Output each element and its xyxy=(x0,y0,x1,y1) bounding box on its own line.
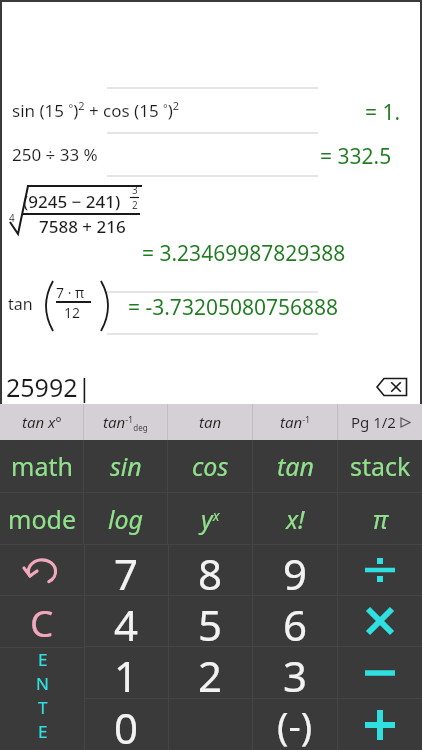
staticText: 2 xyxy=(198,647,223,698)
staticText: stack xyxy=(350,449,411,483)
staticText: C xyxy=(30,597,54,647)
staticText: 9 xyxy=(283,545,308,595)
staticText: 3 xyxy=(283,647,308,698)
button[interactable]: 2 xyxy=(169,647,252,698)
staticText: mode xyxy=(8,502,76,536)
button[interactable]: Minus xyxy=(338,647,422,698)
button[interactable]: tan x° xyxy=(0,404,83,440)
button[interactable]: 4 xyxy=(85,596,168,646)
button[interactable]: tan-1 xyxy=(253,404,337,440)
staticText: 4 xyxy=(9,211,15,225)
staticText: = 1. xyxy=(365,98,401,127)
staticText: π xyxy=(373,502,388,536)
staticText: sin xyxy=(110,449,142,483)
staticText: tan xyxy=(8,293,33,315)
staticText: 8 xyxy=(198,545,223,595)
staticText: 0 xyxy=(114,699,139,750)
staticText: tan xyxy=(199,412,222,432)
button[interactable]: tan xyxy=(253,440,337,492)
button[interactable]: 5 xyxy=(169,596,252,646)
staticText: 2 xyxy=(132,198,138,212)
staticText: (-) xyxy=(277,699,313,750)
button[interactable]: cos xyxy=(168,440,252,492)
button[interactable]: 6 xyxy=(253,596,337,646)
staticText: tan-1 xyxy=(280,412,311,432)
button[interactable]: math xyxy=(0,440,83,492)
staticText: cos xyxy=(192,449,229,483)
staticText: = 332.5 xyxy=(320,142,392,171)
button[interactable]: 9 xyxy=(253,545,337,595)
staticText: 250 ÷ 33 % xyxy=(12,143,98,166)
button[interactable]: Backspace xyxy=(374,375,410,399)
staticText: yx xyxy=(201,502,220,536)
button[interactable]: 3 xyxy=(253,647,337,698)
staticText: 7 · π xyxy=(56,283,85,302)
button[interactable]: C xyxy=(0,596,84,647)
staticText: E xyxy=(38,720,48,743)
button[interactable]: log xyxy=(84,493,167,544)
staticText: = -3.73205080756888 xyxy=(128,293,339,322)
staticText: (9245 − 241) xyxy=(23,190,121,213)
button[interactable]: tan xyxy=(168,404,252,440)
button[interactable]: x! xyxy=(253,493,337,544)
button[interactable]: π xyxy=(338,493,422,544)
staticText: T xyxy=(38,696,48,719)
button[interactable]: Plus xyxy=(338,699,422,750)
button[interactable]: mode xyxy=(0,493,83,544)
staticText: tan xyxy=(277,449,314,483)
button[interactable]: tan-1deg xyxy=(84,404,167,440)
staticText: 1 xyxy=(114,647,139,698)
button[interactable]: Multiply xyxy=(338,596,422,646)
staticText: 6 xyxy=(283,596,308,646)
staticText: x! xyxy=(286,502,305,536)
button[interactable]: stack xyxy=(338,440,422,492)
button[interactable]: Pg 1/2 xyxy=(338,404,422,440)
staticText: 7588 + 216 xyxy=(39,215,126,238)
staticText: 3 xyxy=(132,183,138,197)
staticText: sin (15 °)2 + cos (15 °)2 xyxy=(12,98,180,122)
staticText: E xyxy=(38,648,48,671)
button[interactable]: yx xyxy=(168,493,252,544)
button[interactable]: 8 xyxy=(169,545,252,595)
staticText: N xyxy=(36,672,49,695)
staticText: 7 xyxy=(114,545,139,595)
staticText: 4 xyxy=(114,596,139,646)
staticText: Pg 1/2 xyxy=(351,412,396,432)
button[interactable]: 0 xyxy=(85,699,168,750)
staticText: 5 xyxy=(198,596,223,646)
button[interactable]: Undo xyxy=(0,545,84,595)
staticText: = 3.23469987829388 xyxy=(142,239,346,268)
button[interactable]: sin xyxy=(84,440,167,492)
button[interactable]: Divide xyxy=(338,545,422,595)
staticText: math xyxy=(11,449,73,483)
staticText: 12 xyxy=(64,303,81,322)
button[interactable]: 1 xyxy=(85,647,168,698)
button[interactable]: 7 xyxy=(85,545,168,595)
button[interactable]: E xyxy=(0,648,84,750)
staticText: log xyxy=(108,502,144,536)
staticText: tan-1deg xyxy=(103,412,148,433)
staticText: 25992| xyxy=(6,370,92,404)
staticText: tan x° xyxy=(22,412,62,432)
button[interactable]: (-) xyxy=(253,699,337,750)
